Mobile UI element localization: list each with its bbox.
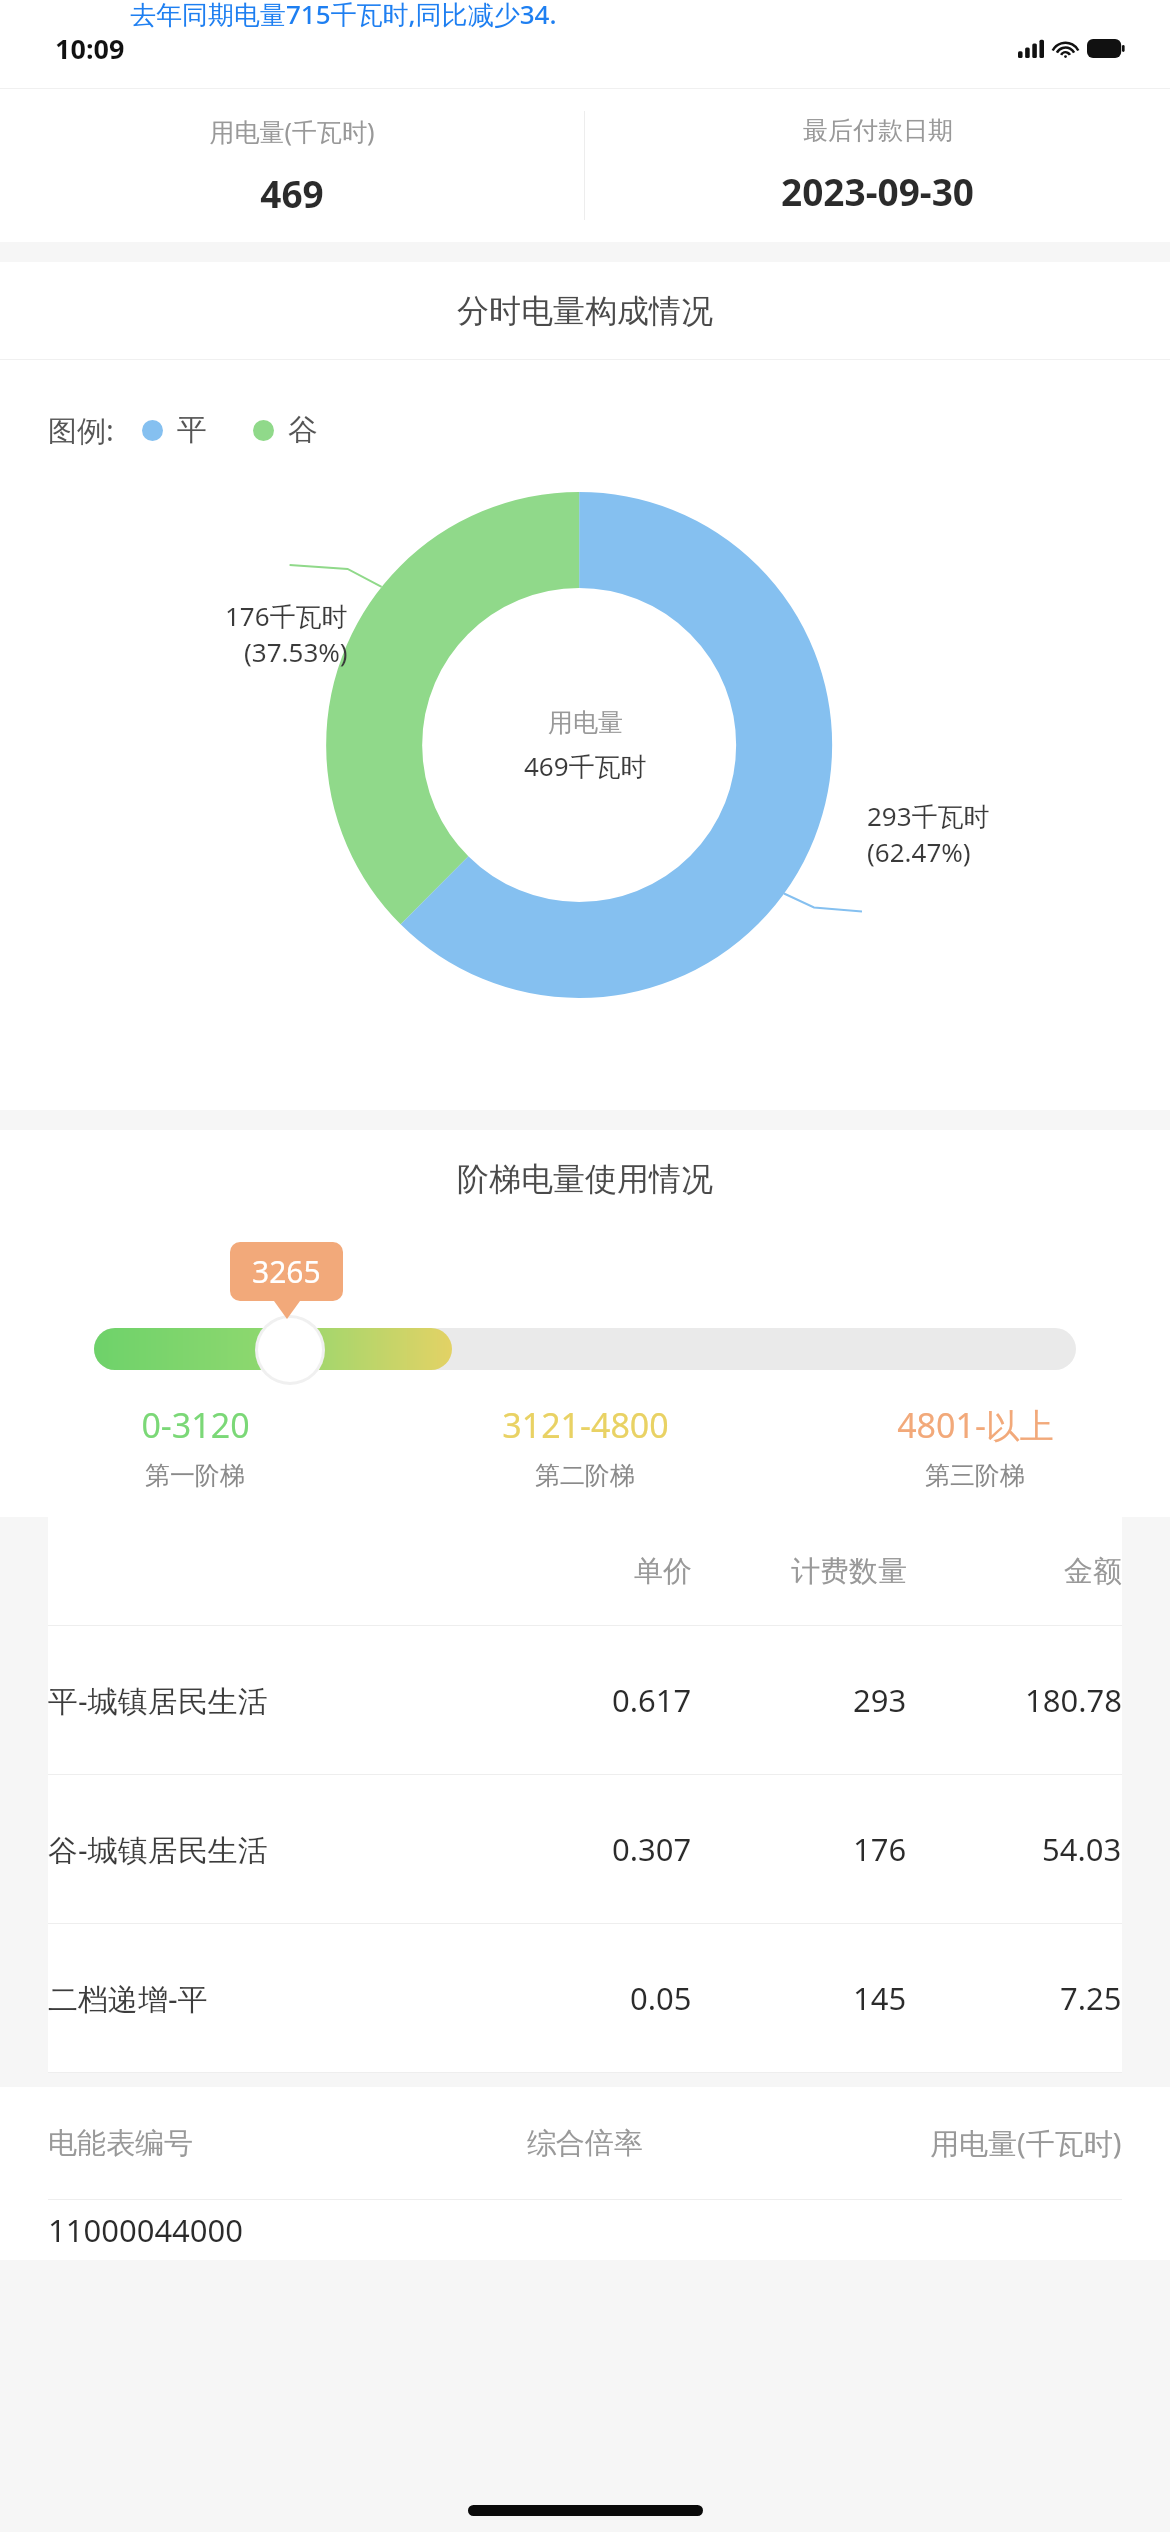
staticText: 用电量 [548,707,623,738]
button[interactable]: 最后付款日期 [585,89,1170,242]
other: Home indicator [468,2505,703,2516]
staticText: 平 [177,411,207,449]
staticText: 谷 [288,411,318,449]
staticText: 3121-4800 [502,1402,669,1448]
staticText: 平-城镇居民生活 [48,1680,268,1721]
button[interactable]: 谷-城镇居民生活 [48,1775,1122,1923]
button[interactable]: 0-3120 [0,1402,390,1491]
staticText: 去年同期电量715千瓦时,同比减少34. [130,0,557,32]
staticText: 0.05 [630,1977,692,2019]
staticText: 54.03 [1042,1828,1122,1870]
staticText: 第一阶梯 [145,1460,245,1491]
staticText: 最后付款日期 [803,115,953,146]
staticText: (62.47%) [867,834,971,869]
staticText: 第三阶梯 [925,1460,1025,1491]
button[interactable]: 平 [142,411,207,449]
staticText: 用电量(千瓦时) [930,2123,1122,2163]
staticText: 0.617 [612,1679,692,1721]
staticText: 计费数量 [791,1553,907,1590]
staticText: 7.25 [1060,1977,1122,2019]
staticText: 293 [853,1679,907,1721]
staticText: 第二阶梯 [535,1460,635,1491]
staticText: 469 [260,168,324,218]
button[interactable]: 3121-4800 [390,1402,780,1491]
button[interactable]: 平-城镇居民生活 [48,1626,1122,1774]
staticText: 180.78 [1025,1679,1122,1721]
staticText: 金额 [1064,1553,1122,1590]
staticText: 分时电量构成情况 [457,291,713,331]
button[interactable] [258,1318,322,1382]
staticText: 11000044000 [48,2209,244,2251]
staticText: 单价 [634,1553,692,1590]
button[interactable]: 用电量(千瓦时) [0,89,584,242]
staticText: 用电量(千瓦时) [209,114,375,148]
staticText: 176 [853,1828,907,1870]
staticText: 阶梯电量使用情况 [457,1159,713,1199]
staticText: 10:09 [55,30,125,67]
staticText: 电能表编号 [48,2125,193,2162]
staticText: 3265 [252,1251,321,1292]
staticText: 469千瓦时 [524,748,647,784]
staticText: 图例: [48,410,114,450]
staticText: 293千瓦时 [867,798,990,834]
staticText: 综合倍率 [527,2125,643,2162]
staticText: 2023-09-30 [781,166,974,216]
staticText: 145 [853,1977,907,2019]
staticText: 谷-城镇居民生活 [48,1829,268,1870]
staticText: 二档递增-平 [48,1978,208,2019]
button[interactable]: 二档递增-平 [48,1924,1122,2072]
button[interactable]: 谷 [253,411,318,449]
staticText: (37.53%) [244,634,348,669]
staticText: 0.307 [612,1828,692,1870]
staticText: 0-3120 [141,1402,250,1448]
button[interactable] [94,1328,1076,1370]
staticText: 176千瓦时 [225,598,348,634]
button[interactable]: 4801-以上 [780,1402,1170,1491]
staticText: 4801-以上 [897,1402,1054,1448]
